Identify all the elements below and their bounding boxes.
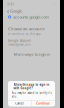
staticText: More ways to sign in: [13, 51, 49, 57]
staticText: to continue to this app: [8, 32, 41, 36]
staticText: accounts.google.com: [13, 14, 49, 20]
staticText: name@gmail.com: [8, 43, 30, 46]
button[interactable]: Google Account: [3, 39, 31, 46]
button[interactable]: More ways to sign in: [3, 51, 60, 57]
staticText: Allow this app to sign in with Google?: [13, 83, 49, 90]
staticText: Choose an account: [8, 26, 45, 31]
button[interactable]: Cancel: [8, 101, 31, 107]
staticText: ‹: [7, 7, 9, 15]
button[interactable]: ‹: [3, 8, 60, 14]
staticText: Cancel: [15, 102, 24, 105]
staticText: 9:41: [7, 1, 14, 7]
staticText: Google Account: [8, 39, 31, 42]
staticText: Continue: [36, 102, 50, 105]
staticText: Google: [10, 8, 22, 14]
button[interactable]: Continue: [32, 101, 55, 107]
staticText: You may be asked to verify it's you.: [11, 91, 51, 98]
